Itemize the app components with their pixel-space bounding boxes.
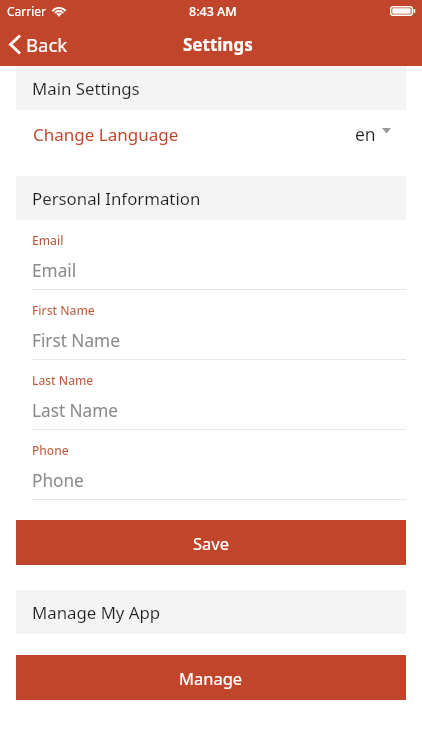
staticText: Save bbox=[193, 532, 230, 554]
staticText: Phone bbox=[32, 469, 84, 492]
button[interactable]: Email bbox=[0, 220, 422, 290]
staticText: First Name bbox=[32, 302, 95, 318]
staticText: en bbox=[355, 122, 376, 146]
staticText: Main Settings bbox=[32, 77, 140, 100]
button[interactable]: First Name bbox=[0, 290, 422, 360]
staticText: Email bbox=[32, 232, 64, 248]
staticText: Email bbox=[32, 259, 77, 282]
staticText: Phone bbox=[32, 442, 69, 458]
staticText: First Name bbox=[32, 329, 120, 352]
staticText: Manage bbox=[179, 667, 243, 689]
button[interactable]: Back bbox=[0, 26, 76, 63]
button[interactable]: Select language bbox=[347, 114, 422, 154]
button[interactable]: Save bbox=[16, 520, 406, 565]
staticText: Carrier bbox=[7, 3, 47, 19]
button[interactable]: Phone bbox=[0, 430, 422, 500]
staticText: Manage My App bbox=[32, 601, 161, 624]
button[interactable]: Change Language bbox=[0, 110, 422, 158]
staticText: Settings bbox=[183, 33, 253, 56]
button[interactable]: Manage bbox=[16, 655, 406, 700]
staticText: Personal Information bbox=[32, 187, 201, 210]
staticText: Last Name bbox=[32, 372, 94, 388]
staticText: Back bbox=[26, 32, 68, 57]
staticText: Change Language bbox=[33, 123, 179, 146]
button[interactable]: Last Name bbox=[0, 360, 422, 430]
staticText: Last Name bbox=[32, 399, 119, 422]
staticText: 8:43 AM bbox=[189, 3, 237, 20]
